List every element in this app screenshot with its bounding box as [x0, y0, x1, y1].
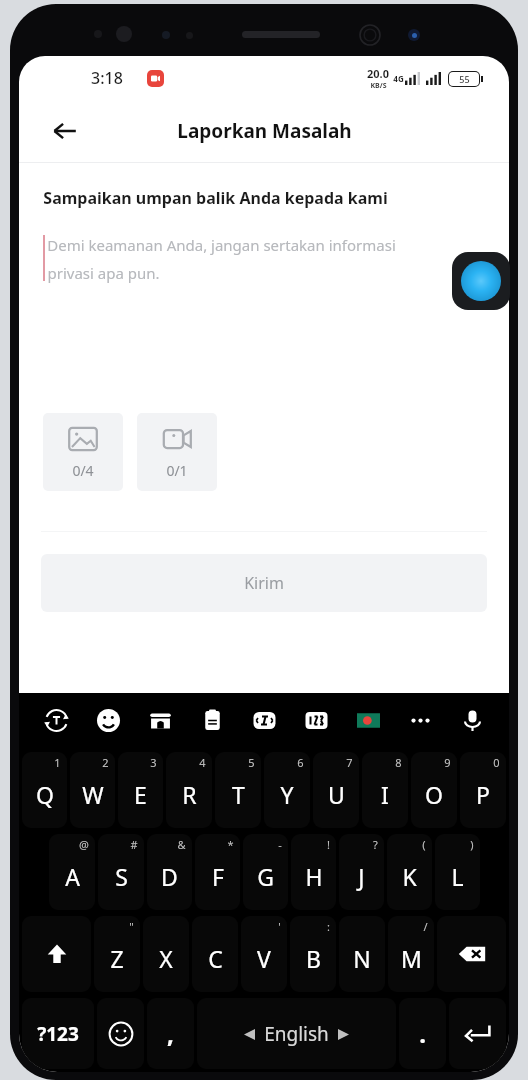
button[interactable]: '	[241, 916, 287, 992]
button[interactable]: ?	[339, 834, 384, 910]
staticText: ?123	[37, 1021, 79, 1047]
staticText: 3:18	[91, 67, 123, 89]
staticText: :	[327, 919, 330, 934]
button[interactable]: C	[192, 916, 238, 992]
staticText: 4G	[393, 73, 404, 84]
staticText: 0/4	[72, 461, 94, 480]
staticText: C	[208, 943, 223, 974]
staticText: !	[327, 837, 330, 852]
button[interactable]: 2	[70, 752, 115, 828]
staticText: 3	[150, 755, 157, 770]
staticText: '	[278, 919, 281, 934]
button[interactable]: 9	[411, 752, 457, 828]
staticText: Demi keamanan Anda, jangan sertakan info…	[47, 235, 396, 255]
button[interactable]: Language	[351, 703, 385, 737]
staticText: 5	[248, 755, 255, 770]
staticText: R	[182, 779, 197, 810]
staticText: /	[423, 919, 428, 934]
button[interactable]: )	[435, 834, 480, 910]
button[interactable]: @	[49, 834, 95, 910]
staticText: ,	[167, 1017, 174, 1050]
staticText: 4	[199, 755, 206, 770]
staticText: 0	[493, 755, 500, 770]
button[interactable]: Backspace	[437, 916, 506, 992]
button[interactable]: /	[388, 916, 434, 992]
button[interactable]: 8	[362, 752, 408, 828]
button[interactable]: 3	[118, 752, 163, 828]
button[interactable]: 6	[264, 752, 310, 828]
staticText: O	[425, 779, 443, 810]
staticText: N	[353, 943, 371, 974]
staticText: 1	[54, 755, 61, 770]
button[interactable]: 1	[22, 752, 67, 828]
button[interactable]: Text style	[247, 703, 281, 737]
button[interactable]: 0/1	[137, 413, 217, 491]
button[interactable]: Store	[143, 703, 177, 737]
staticText: "	[129, 919, 134, 934]
staticText: F	[212, 861, 224, 892]
staticText: P	[476, 779, 490, 810]
staticText: 9	[444, 755, 451, 770]
staticText: U	[328, 779, 345, 810]
staticText: privasi apa pun.	[47, 263, 160, 283]
button[interactable]: !	[291, 834, 336, 910]
staticText: KB/S	[370, 81, 387, 91]
button[interactable]: ?123	[22, 998, 94, 1069]
button[interactable]: .	[399, 998, 446, 1069]
button[interactable]: 5	[215, 752, 261, 828]
button[interactable]: :	[290, 916, 336, 992]
staticText: G	[257, 861, 274, 892]
staticText: 7	[346, 755, 353, 770]
button[interactable]: Clipboard	[195, 703, 229, 737]
button[interactable]: 0/4	[43, 413, 123, 491]
staticText: #	[130, 837, 138, 852]
staticText: Kirim	[244, 572, 284, 594]
staticText: 0/1	[166, 461, 188, 480]
staticText: Q	[36, 779, 54, 810]
staticText: L	[451, 861, 464, 892]
button[interactable]: Shift	[22, 916, 91, 992]
staticText: &	[177, 837, 186, 852]
staticText: A	[65, 861, 80, 892]
button[interactable]: 0	[460, 752, 506, 828]
button[interactable]: X	[143, 916, 189, 992]
staticText: T	[232, 779, 245, 810]
button[interactable]: More	[403, 703, 437, 737]
button[interactable]: Voice input	[455, 703, 489, 737]
staticText: Y	[280, 779, 294, 810]
button[interactable]: "	[94, 916, 140, 992]
staticText: X	[159, 943, 173, 974]
staticText: ?	[373, 837, 378, 852]
button[interactable]: Kirim	[41, 554, 487, 612]
staticText: 8	[395, 755, 402, 770]
staticText: )	[470, 837, 474, 852]
button[interactable]: Floating assistant	[452, 252, 510, 310]
staticText: English	[264, 1021, 329, 1047]
button[interactable]: 7	[313, 752, 359, 828]
staticText: 2	[102, 755, 109, 770]
staticText: Laporkan Masalah	[177, 118, 352, 144]
button[interactable]: Numbers	[299, 703, 333, 737]
staticText: 6	[297, 755, 304, 770]
staticText: H	[305, 861, 323, 892]
staticText: M	[401, 943, 422, 974]
staticText: J	[358, 861, 365, 892]
button[interactable]: ,	[147, 998, 194, 1069]
button[interactable]: Emoji	[91, 703, 125, 737]
button[interactable]: Enter	[449, 998, 506, 1069]
button[interactable]: #	[98, 834, 144, 910]
button[interactable]: N	[339, 916, 385, 992]
button[interactable]: (	[387, 834, 432, 910]
button[interactable]: Space, English	[197, 998, 396, 1069]
button[interactable]: Translate	[39, 703, 73, 737]
button[interactable]: 4	[166, 752, 212, 828]
button[interactable]: &	[147, 834, 192, 910]
staticText: .	[419, 1017, 426, 1050]
staticText: B	[306, 943, 321, 974]
button[interactable]: *	[195, 834, 240, 910]
button[interactable]: -	[243, 834, 288, 910]
button[interactable]: Emoji	[97, 998, 144, 1069]
button[interactable]: Back	[43, 109, 87, 153]
staticText: W	[82, 779, 104, 810]
staticText: 55	[459, 73, 470, 85]
